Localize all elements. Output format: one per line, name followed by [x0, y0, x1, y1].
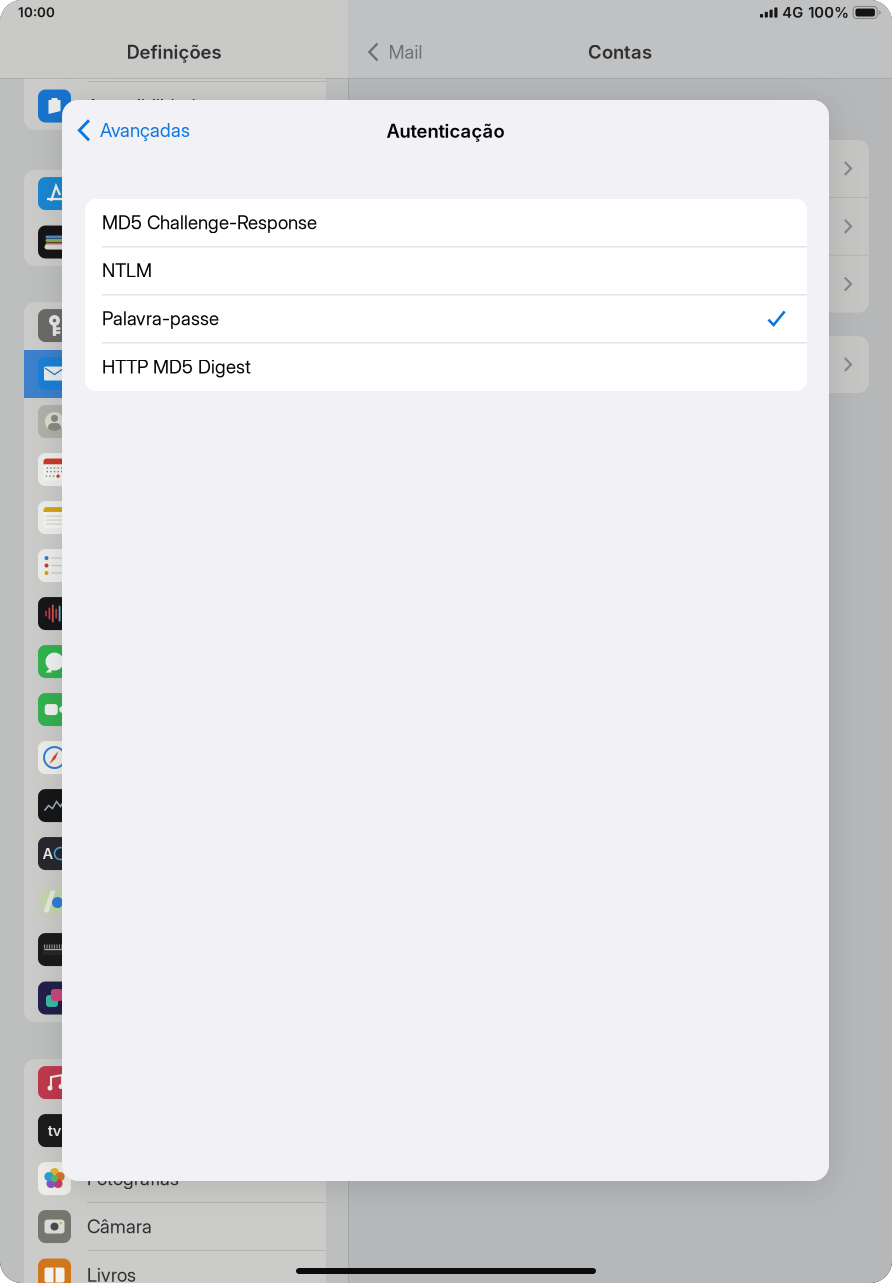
button[interactable]: Notas — [24, 494, 326, 542]
button[interactable]: App Store — [24, 170, 326, 218]
button[interactable]: Música — [24, 1059, 326, 1107]
button[interactable]: Contactos — [24, 398, 326, 446]
staticText: Acessibilidade — [87, 95, 206, 117]
staticText: Definições — [126, 41, 221, 63]
staticText: Carteira — [87, 231, 152, 253]
button[interactable]: Safari — [24, 734, 326, 782]
button[interactable] — [24, 1107, 326, 1155]
staticText: 4G — [782, 4, 803, 21]
button[interactable]: Palavras-passe — [24, 302, 326, 350]
staticText: App Store — [87, 182, 169, 205]
button[interactable]: Carteira — [24, 218, 326, 266]
button[interactable]: Avançadas — [62, 110, 204, 151]
staticText: Livros — [87, 1264, 136, 1283]
button[interactable]: Atalhos — [24, 974, 326, 1022]
staticText: Palavra-passe — [102, 307, 219, 330]
button[interactable]: A — [24, 830, 326, 878]
staticText: Geral — [87, 46, 131, 69]
staticText: A — [42, 845, 53, 862]
staticText: Fotografias — [87, 1167, 179, 1190]
button[interactable]: Geral — [24, 34, 326, 82]
staticText: 10:00 — [18, 4, 55, 20]
button[interactable]: Mensagens — [24, 638, 326, 686]
staticText: Mail — [388, 41, 422, 63]
button[interactable]: Calendário — [24, 446, 326, 494]
button[interactable]: FaceTime — [24, 686, 326, 734]
button[interactable]: Memos de Voz — [24, 590, 326, 638]
button[interactable]: Palavra-passe — [85, 295, 807, 343]
staticText: 100% — [808, 4, 849, 21]
button[interactable]: Mail — [24, 350, 326, 398]
button[interactable]: Fotografias — [24, 1155, 326, 1203]
button[interactable]: NTLM — [85, 247, 807, 295]
staticText: tv — [48, 1122, 62, 1139]
staticText: MD5 Challenge-Response — [102, 211, 317, 234]
button[interactable]: Câmara — [24, 1203, 326, 1251]
button[interactable]: Bolsa — [24, 782, 326, 830]
staticText: NTLM — [102, 259, 152, 282]
button[interactable]: Medições — [24, 926, 326, 974]
button[interactable]: Livros — [24, 1251, 326, 1283]
button[interactable]: Acessibilidade — [24, 82, 326, 130]
staticText: Câmara — [87, 1215, 152, 1238]
staticText: HTTP MD5 Digest — [102, 355, 251, 378]
button[interactable]: HTTP MD5 Digest — [85, 343, 807, 391]
button[interactable]: Mapas — [24, 878, 326, 926]
staticText: Palavras-passe — [87, 314, 213, 337]
staticText: Contas — [588, 41, 652, 63]
staticText: Avançadas — [100, 119, 190, 142]
button[interactable]: Lembretes — [24, 542, 326, 590]
staticText: Autenticação — [386, 120, 504, 142]
staticText: Mail — [87, 362, 121, 385]
button[interactable]: MD5 Challenge-Response — [85, 199, 807, 247]
